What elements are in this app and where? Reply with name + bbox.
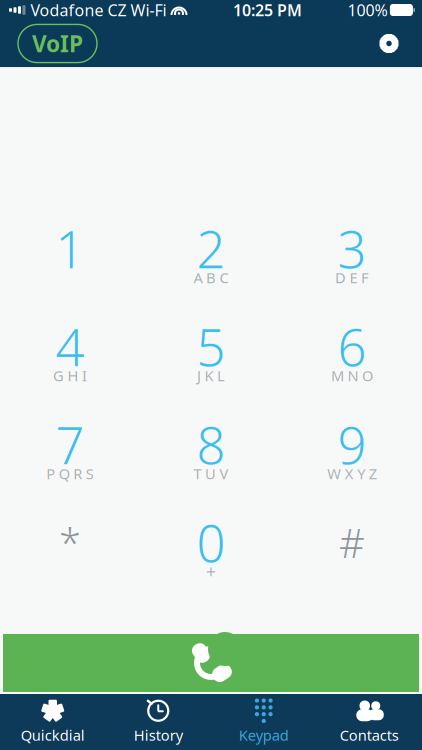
button[interactable]: 6 [297,317,407,389]
button[interactable]: 5 [156,317,266,389]
staticText: B [206,268,216,287]
staticText: W [327,464,341,483]
staticText: Vodafone CZ Wi-Fi [30,0,166,21]
button[interactable]: 9 [297,415,407,487]
staticText: Keypad [239,725,289,745]
staticText: 7 [55,411,84,478]
button[interactable]: History [105,696,211,748]
staticText: History [134,725,183,745]
staticText: P [46,464,55,483]
staticText: O [362,366,373,385]
staticText: 0 [196,509,225,576]
staticText: N [347,366,358,385]
staticText: M [331,366,344,385]
button[interactable]: Keypad [211,696,316,748]
staticText: # [339,516,365,569]
staticText: T [193,464,201,483]
staticText: 5 [196,313,225,380]
staticText: * [59,516,81,569]
staticText: A [193,268,202,287]
staticText: VoIP [32,28,83,58]
staticText: H [67,366,78,385]
staticText: R [73,464,82,483]
button[interactable]: Contacts [316,696,422,748]
staticText: 9 [337,411,366,478]
staticText: Contacts [340,725,399,745]
button[interactable]: 1 [15,219,125,291]
staticText: S [86,464,94,483]
staticText: J [197,366,201,385]
staticText: I [82,366,87,385]
staticText: 100% [347,0,387,21]
staticText: 2 [196,215,225,282]
staticText: Z [369,464,377,483]
staticText: X [345,464,354,483]
staticText: V [219,464,228,483]
button[interactable]: 0 [156,513,266,585]
staticText: + [206,560,216,583]
staticText: Q [59,464,70,483]
button[interactable]: * [15,513,125,585]
button[interactable]: 4 [15,317,125,389]
staticText: 3 [337,215,366,282]
button[interactable]: # [297,513,407,585]
staticText: C [219,268,228,287]
staticText: K [204,366,213,385]
button[interactable]: 8 [156,415,266,487]
staticText: D [335,268,346,287]
button[interactable]: Quickdial [0,696,105,748]
button[interactable]: 7 [15,415,125,487]
button[interactable]: Settings [370,24,408,62]
staticText: L [217,366,225,385]
button[interactable]: 3 [297,219,407,291]
button[interactable]: VoIP [18,24,97,62]
staticText: 8 [196,411,225,478]
staticText: E [349,268,357,287]
staticText: U [205,464,216,483]
staticText: 6 [337,313,366,380]
staticText: Y [357,464,365,483]
staticText: 10:25 PM [233,0,302,21]
staticText: 4 [55,313,84,380]
button[interactable]: 2 [156,219,266,291]
staticText: Quickdial [21,725,85,745]
staticText: 1 [55,215,84,282]
staticText: F [361,268,369,287]
button[interactable]: Call [3,634,419,692]
staticText: G [53,366,64,385]
